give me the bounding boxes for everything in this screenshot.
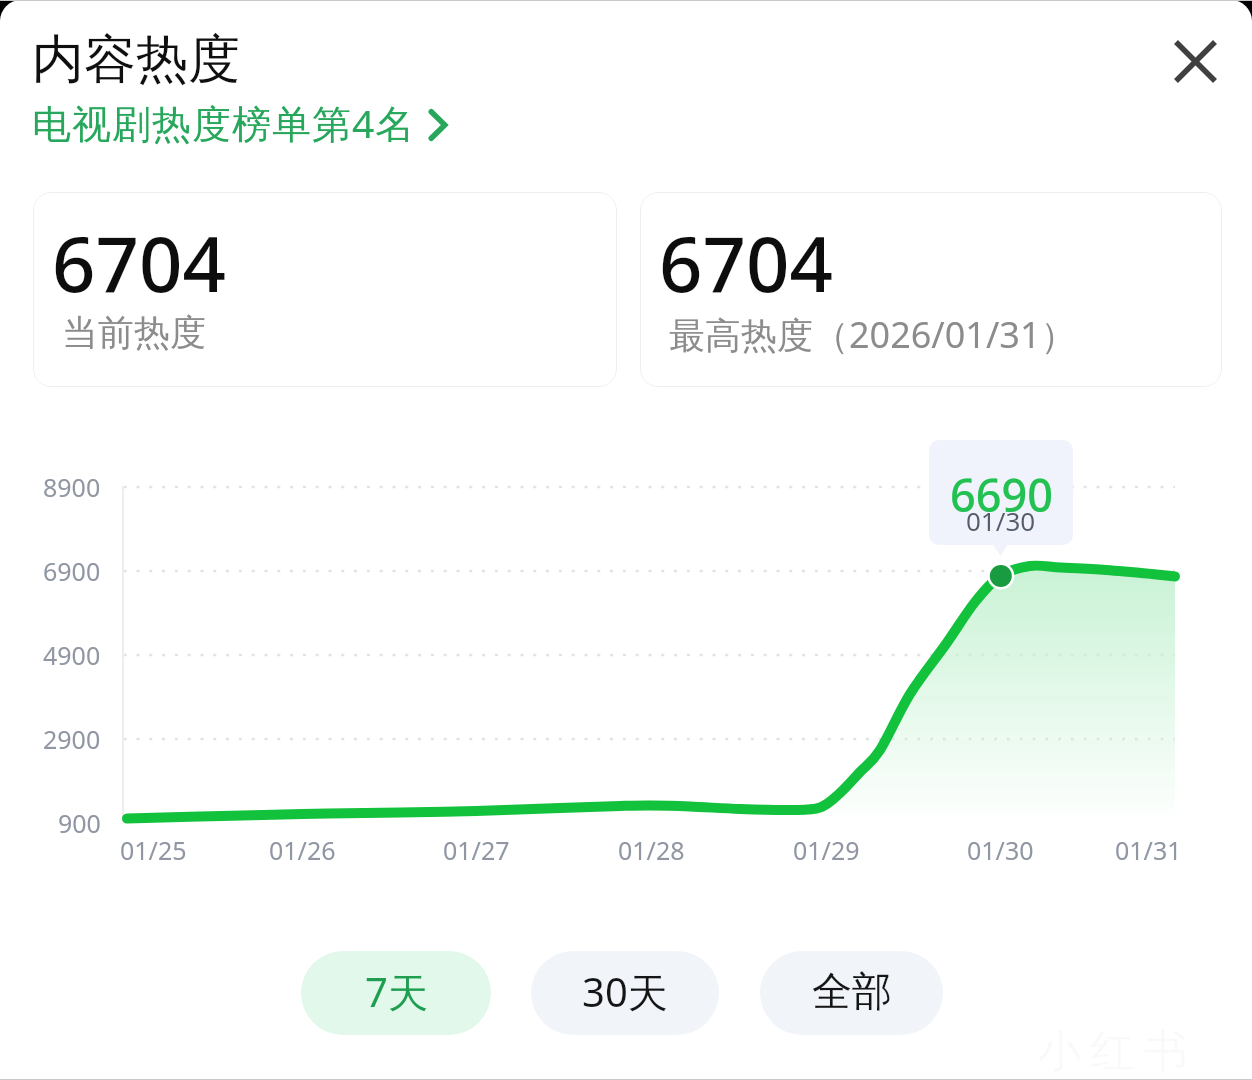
button[interactable]: 7天	[301, 951, 491, 1035]
staticText: 6900	[43, 554, 101, 588]
button[interactable]: 6704	[640, 192, 1222, 387]
staticText: 01/27	[443, 833, 510, 867]
button[interactable]: 30天	[531, 951, 719, 1035]
staticText: 最高热度（2026/01/31）	[669, 310, 1077, 359]
button[interactable]: 6704	[33, 192, 617, 387]
staticText: 2900	[43, 722, 101, 756]
staticText: 全部	[812, 966, 892, 1016]
staticText: 01/26	[269, 833, 336, 867]
staticText: 电视剧热度榜单第4名	[32, 96, 416, 149]
staticText: 4900	[43, 638, 101, 672]
staticText: 01/28	[618, 833, 685, 867]
staticText: 30天	[582, 964, 668, 1019]
button[interactable]: 全部	[760, 951, 943, 1035]
staticText: 7天	[365, 964, 428, 1019]
staticText: 01/29	[793, 833, 860, 867]
staticText: 6690	[950, 464, 1053, 525]
staticText: 8900	[43, 470, 101, 504]
staticText: 01/30	[967, 833, 1034, 867]
staticText: 01/30	[966, 503, 1036, 538]
staticText: 6704	[659, 211, 833, 315]
button[interactable]: Close	[1155, 21, 1235, 101]
staticText: 当前热度	[62, 310, 206, 355]
staticText: 900	[58, 806, 101, 840]
button[interactable]: 电视剧热度榜单第4名	[32, 96, 450, 149]
staticText: 内容热度	[32, 27, 240, 93]
staticText: 6704	[52, 211, 226, 315]
staticText: 01/25	[120, 833, 187, 867]
staticText: 01/31	[1115, 833, 1182, 867]
